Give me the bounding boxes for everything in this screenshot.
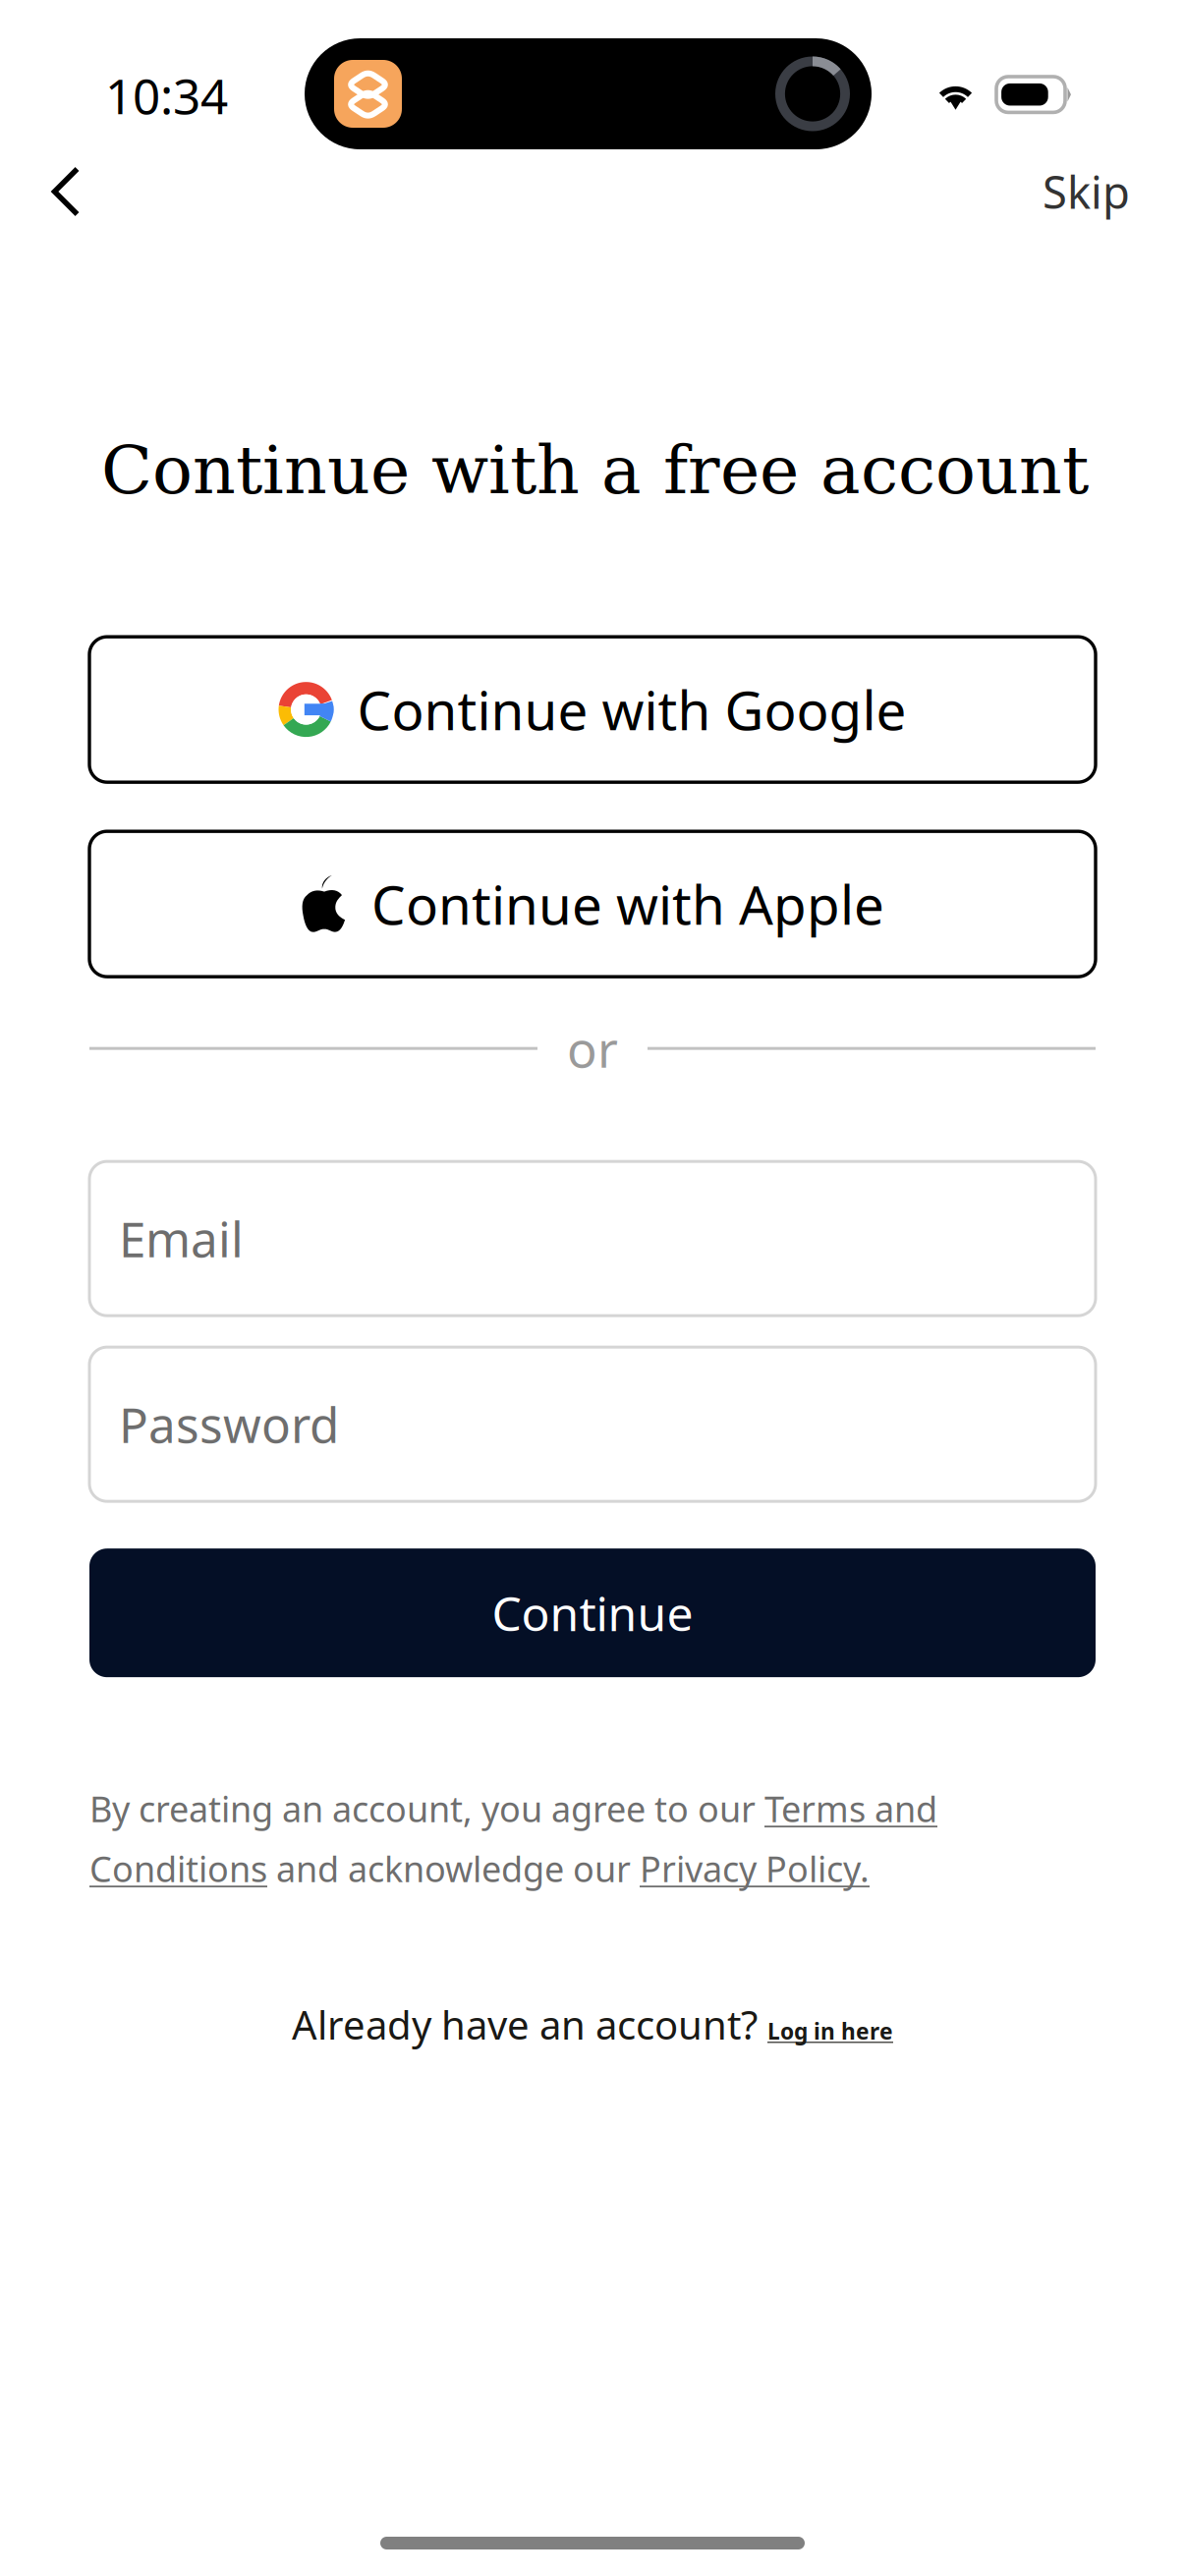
staticText: Already have an account? Log in here (292, 1998, 893, 2051)
staticText: Password (119, 1391, 339, 1457)
staticText: By creating an account, you agree to our… (89, 1784, 937, 1893)
button[interactable]: Continue (89, 1549, 1096, 1677)
staticText: Email (119, 1206, 244, 1272)
staticText: Continue (492, 1581, 693, 1645)
button[interactable]: Already have an account? Log in here (89, 1998, 1096, 2051)
staticText: or (567, 1015, 618, 1082)
button[interactable]: Back (24, 149, 108, 234)
staticText: Continue with a free account (101, 431, 1089, 509)
button[interactable]: Skip (1027, 149, 1146, 234)
staticText: Continue with Google (357, 673, 906, 746)
staticText: Skip (1043, 161, 1130, 222)
button[interactable]: Continue with Apple (89, 831, 1096, 977)
button[interactable]: Continue with Google (89, 637, 1096, 782)
button[interactable]: Email (89, 1161, 1096, 1316)
staticText: Continue with Apple (371, 867, 884, 941)
button[interactable]: By creating an account, you agree to our… (89, 1784, 1096, 1893)
button[interactable]: Password (89, 1347, 1096, 1501)
staticText: 10:34 (105, 62, 228, 128)
